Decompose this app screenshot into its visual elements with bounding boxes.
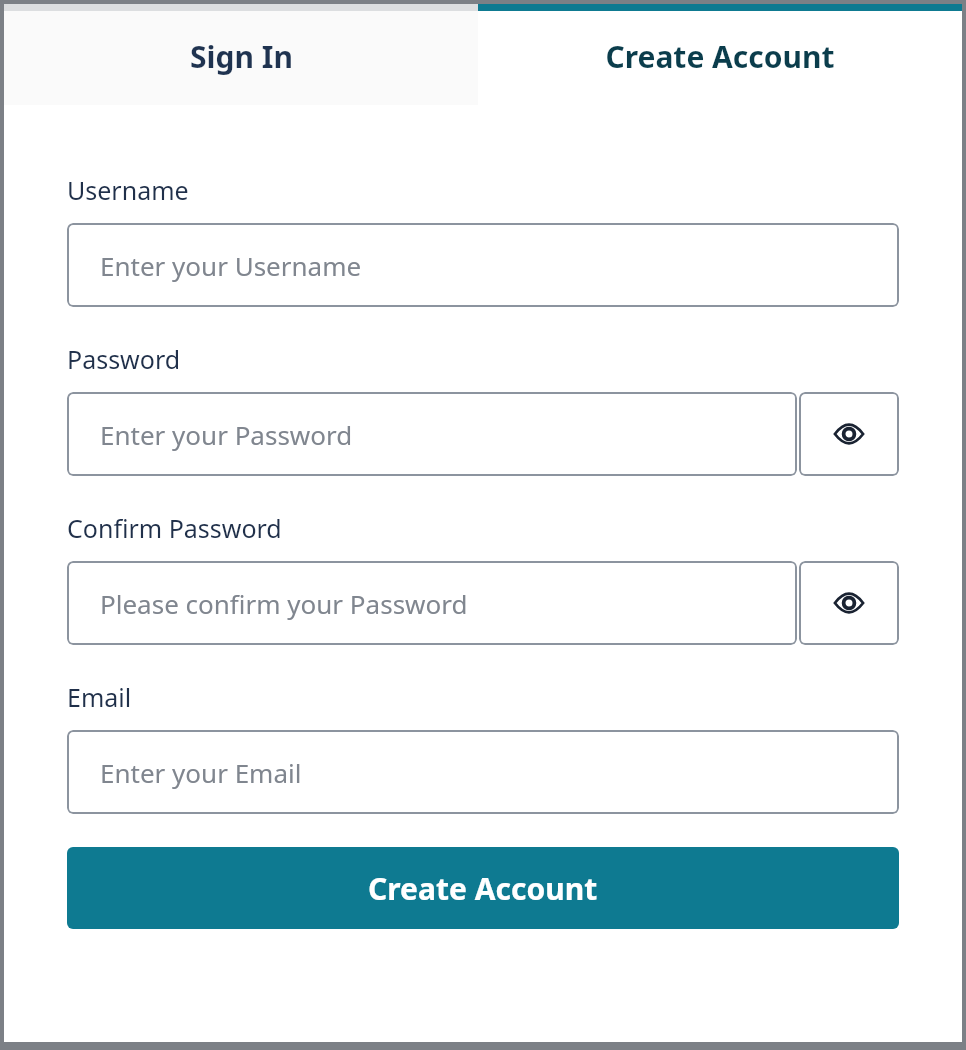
staticText: Confirm Password [67, 511, 282, 545]
staticText: Create Account [368, 868, 598, 909]
staticText: Sign In [190, 36, 293, 77]
staticText: Enter your Username [100, 248, 362, 283]
button[interactable]: Show password [799, 561, 899, 645]
button[interactable]: Enter your Password [67, 392, 797, 476]
button[interactable]: Enter your Username [67, 223, 899, 307]
button[interactable]: Show password [799, 392, 899, 476]
staticText: Password [67, 342, 181, 376]
staticText: Please confirm your Password [100, 586, 468, 621]
staticText: Create Account [605, 36, 835, 77]
staticText: Username [67, 173, 189, 207]
button[interactable]: Sign In [4, 4, 478, 105]
button[interactable]: Enter your Email [67, 730, 899, 814]
staticText: Email [67, 680, 132, 714]
button[interactable]: Create Account [478, 4, 962, 105]
button[interactable]: Please confirm your Password [67, 561, 797, 645]
button[interactable]: Create Account [67, 847, 899, 929]
staticText: Enter your Email [100, 755, 302, 790]
staticText: Enter your Password [100, 417, 353, 452]
